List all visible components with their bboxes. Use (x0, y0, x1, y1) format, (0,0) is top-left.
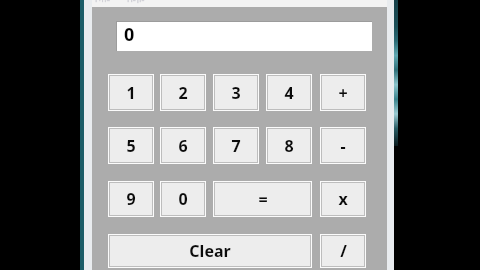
button[interactable]: Eight (266, 127, 312, 164)
button[interactable]: Zero (160, 181, 206, 217)
staticText: + (338, 82, 348, 104)
button[interactable]: Menu bar: File, Help (92, 0, 387, 7)
staticText: 2 (178, 82, 188, 104)
staticText: 8 (284, 135, 294, 157)
button[interactable]: Two (160, 74, 206, 111)
staticText: 5 (126, 135, 136, 157)
button[interactable]: Display (116, 21, 372, 51)
button[interactable]: Equals (213, 181, 312, 217)
button[interactable]: Divide (320, 234, 366, 268)
staticText: 0 (124, 22, 135, 47)
button[interactable]: Clear (108, 234, 312, 268)
button[interactable]: Three (213, 74, 259, 111)
button[interactable]: Minus (320, 127, 366, 164)
button[interactable]: Six (160, 127, 206, 164)
button[interactable]: Nine (108, 181, 154, 217)
button[interactable]: Multiply (320, 181, 366, 217)
staticText: 7 (231, 135, 241, 157)
staticText: 4 (284, 82, 294, 104)
staticText: / (340, 240, 347, 262)
staticText: 6 (178, 135, 188, 157)
staticText: 0 (178, 188, 188, 210)
button[interactable]: Seven (213, 127, 259, 164)
staticText: 1 (126, 82, 136, 104)
staticText: x (338, 188, 348, 210)
button[interactable]: One (108, 74, 154, 111)
button[interactable]: Four (266, 74, 312, 111)
staticText: Clear (189, 240, 231, 262)
button[interactable]: Plus (320, 74, 366, 111)
staticText: 9 (126, 188, 136, 210)
staticText: 3 (231, 82, 241, 104)
staticText: = (258, 188, 268, 210)
button[interactable]: Five (108, 127, 154, 164)
staticText: - (340, 135, 346, 157)
